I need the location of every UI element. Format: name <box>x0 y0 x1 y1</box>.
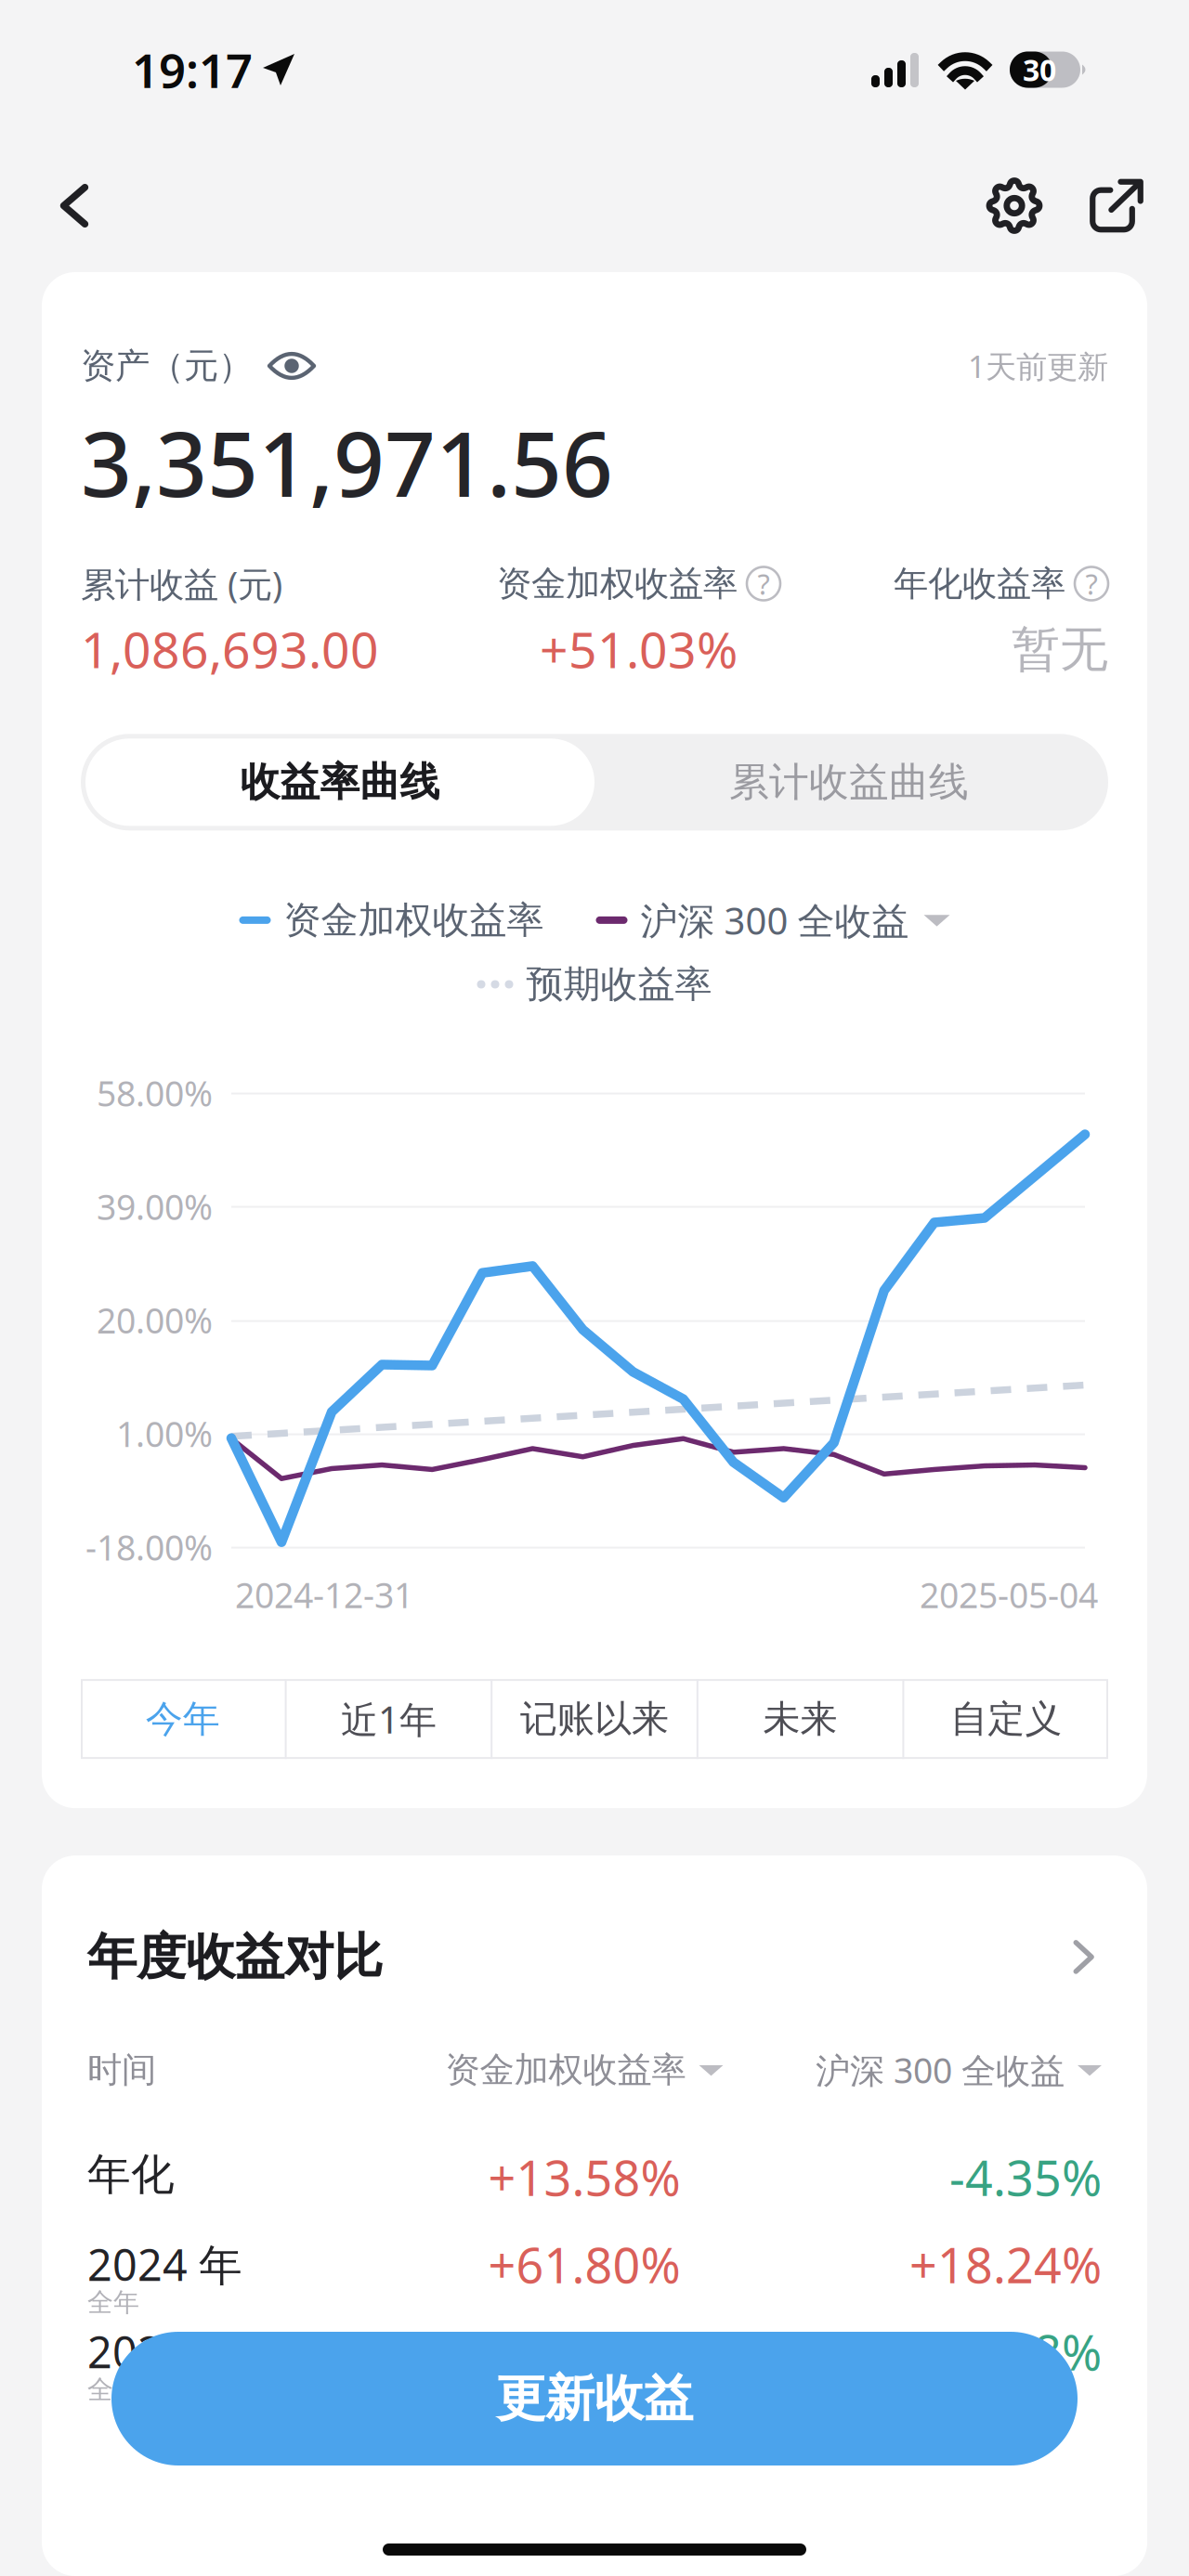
button[interactable]: 今年 <box>81 1679 285 1759</box>
staticText: 记账以来 <box>520 1696 669 1742</box>
staticText: 更新收益 <box>496 2368 693 2429</box>
staticText: 时间 <box>87 2049 156 2091</box>
staticText: -4.35% <box>949 2145 1102 2209</box>
staticText: 资产（元） <box>81 345 253 387</box>
staticText: ? <box>1085 565 1098 602</box>
button[interactable]: Share <box>1065 155 1168 257</box>
staticText: +18.24% <box>909 2233 1102 2297</box>
staticText: 39.00% <box>97 1184 213 1230</box>
staticText: 1.00% <box>116 1411 213 1457</box>
staticText: 年度收益对比 <box>87 1927 383 1987</box>
staticText: 自定义 <box>950 1696 1062 1742</box>
staticText: 近1年 <box>341 1694 436 1744</box>
button[interactable]: Back <box>24 155 126 257</box>
staticText: 资金加权收益率 <box>284 897 544 943</box>
staticText: 1,086,693.00 <box>81 616 379 682</box>
button[interactable]: 记账以来 <box>493 1679 696 1759</box>
staticText: ? <box>758 565 770 602</box>
staticText: 19:17 <box>132 38 253 101</box>
staticText: 2025-05-04 <box>920 1572 1098 1618</box>
staticText: 年化收益率 <box>894 562 1065 605</box>
staticText: 未来 <box>763 1696 838 1742</box>
staticText: 收益率曲线 <box>240 758 440 807</box>
staticText: -8.12% <box>508 2320 660 2384</box>
staticText: 今年 <box>146 1696 220 1742</box>
staticText: 3,351,971.56 <box>81 403 613 521</box>
button[interactable]: Toggle balance visibility <box>253 343 316 388</box>
staticText: 资金加权收益率 <box>497 562 738 605</box>
staticText: +13.58% <box>488 2145 680 2209</box>
staticText: +61.80% <box>488 2233 680 2297</box>
button[interactable]: 收益率曲线 <box>85 739 594 826</box>
staticText: -18.00% <box>85 1524 213 1570</box>
staticText: 暂无 <box>1012 620 1108 679</box>
staticText: 沪深 300 全收益 <box>816 2047 1065 2093</box>
staticText: 累计收益 (元) <box>81 561 282 607</box>
button[interactable]: 累计收益曲线 <box>594 739 1104 826</box>
staticText: 2023 年 <box>87 2323 242 2380</box>
staticText: 30 <box>1023 50 1056 89</box>
staticText: 沪深 300 全收益 <box>640 895 909 945</box>
button[interactable]: 年度收益对比 <box>87 1855 1102 1987</box>
button[interactable]: 自定义 <box>904 1679 1108 1759</box>
staticText: 1天前更新 <box>968 345 1108 386</box>
staticText: 20.00% <box>97 1297 213 1343</box>
staticText: 资金加权收益率 <box>445 2049 686 2091</box>
staticText: 全年 <box>87 2286 139 2318</box>
button[interactable]: 更新收益 <box>111 2332 1078 2465</box>
button[interactable]: 未来 <box>698 1679 902 1759</box>
staticText: 年化 <box>87 2148 175 2201</box>
staticText: 2024-12-31 <box>235 1572 413 1618</box>
staticText: 58.00% <box>97 1070 213 1116</box>
staticText: +51.03% <box>540 616 738 682</box>
staticText: -11.38% <box>921 2320 1102 2384</box>
button[interactable]: 近1年 <box>287 1679 491 1759</box>
staticText: 全年 <box>87 2374 139 2406</box>
button[interactable]: Settings <box>963 155 1065 257</box>
staticText: 预期收益率 <box>526 961 712 1007</box>
staticText: 2024 年 <box>87 2235 242 2293</box>
staticText: 累计收益曲线 <box>729 758 969 807</box>
